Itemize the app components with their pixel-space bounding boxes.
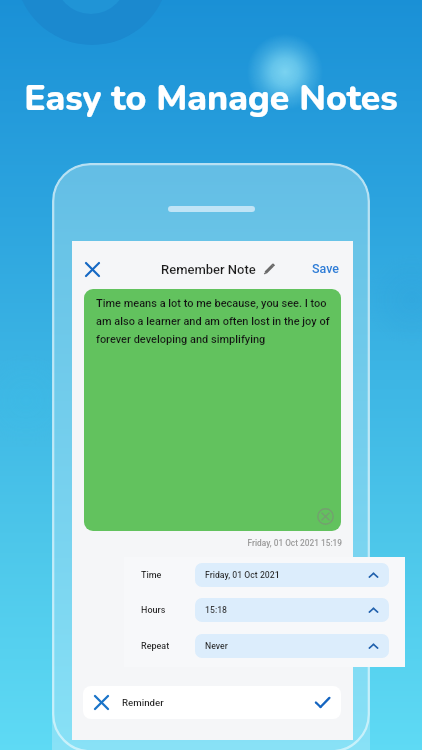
staticText: Friday, 01 Oct 2021 15:19 (72, 538, 342, 548)
staticText: Time (141, 570, 162, 581)
staticText: Friday, 01 Oct 2021 (205, 570, 280, 580)
staticText: Easy to Manage Notes (0, 74, 422, 122)
button[interactable]: Clear note (316, 507, 334, 525)
button[interactable]: Time (124, 563, 405, 587)
button[interactable]: Edit title (261, 261, 277, 277)
button[interactable]: Reminder (83, 686, 341, 719)
button[interactable]: Save (309, 257, 343, 280)
staticText: Never (205, 641, 228, 651)
staticText: Hours (141, 605, 166, 616)
staticText: Reminder (122, 697, 164, 708)
button[interactable]: Close (73, 250, 111, 288)
button[interactable]: Repeat (124, 634, 405, 658)
button[interactable]: Hours (124, 598, 405, 622)
staticText: Time means a lot to me because, you see.… (96, 297, 330, 346)
staticText: 15:18 (205, 605, 228, 615)
button[interactable]: Time means a lot to me because, you see.… (84, 289, 341, 531)
staticText: Remember Note (161, 262, 256, 277)
staticText: Repeat (141, 641, 170, 652)
staticText: Save (312, 261, 340, 276)
